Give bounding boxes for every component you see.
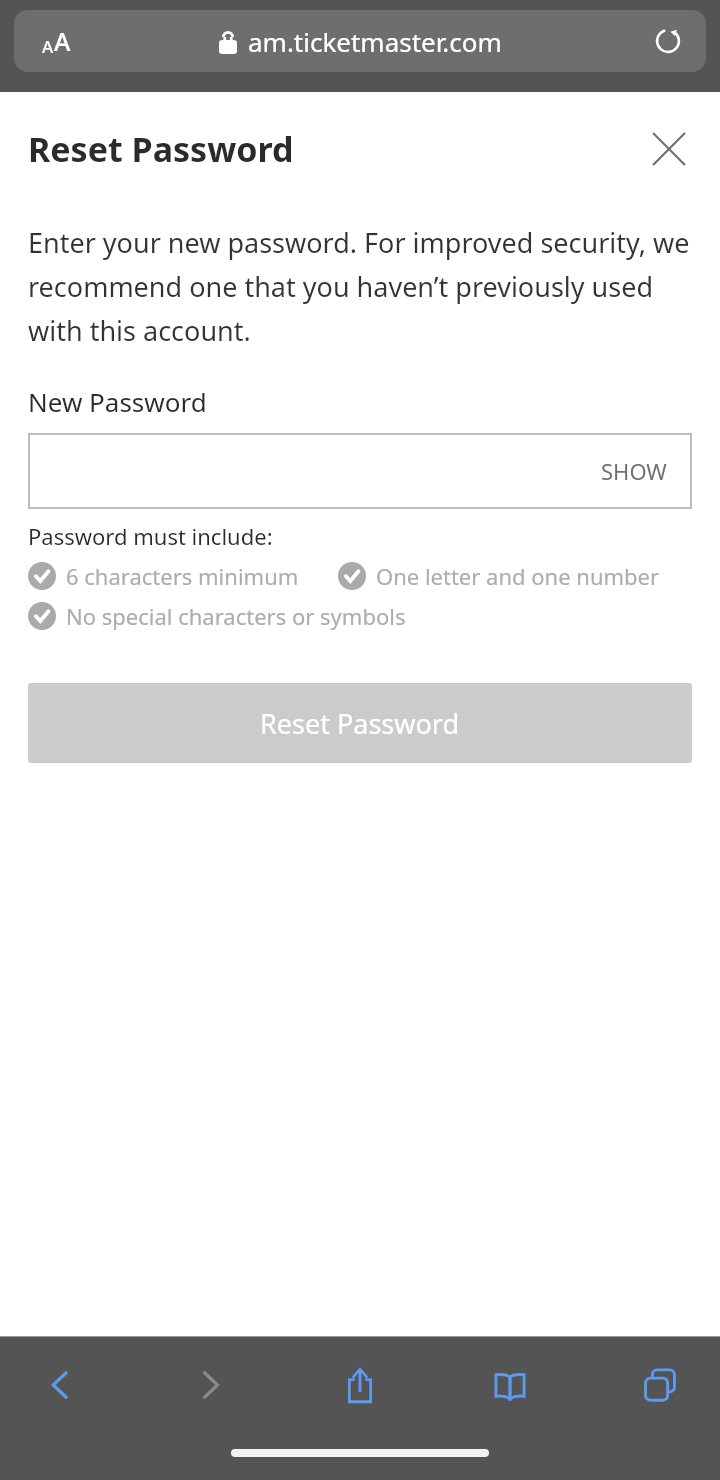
staticText: am.ticketmaster.com bbox=[248, 24, 502, 59]
button[interactable]: Reload page bbox=[646, 19, 690, 63]
button[interactable]: Close bbox=[642, 122, 696, 176]
button[interactable]: SHOW bbox=[28, 433, 692, 509]
staticText: New Password bbox=[28, 384, 207, 419]
button[interactable]: Share bbox=[322, 1347, 398, 1423]
staticText: 6 characters minimum bbox=[66, 561, 299, 591]
button[interactable]: Bookmarks bbox=[472, 1347, 548, 1423]
staticText: Reset Password bbox=[28, 126, 294, 172]
staticText: A bbox=[42, 35, 54, 58]
button[interactable]: Text size options bbox=[14, 10, 706, 72]
button[interactable]: Text size options bbox=[28, 18, 84, 64]
staticText: A bbox=[54, 24, 71, 58]
staticText: SHOW bbox=[601, 456, 667, 486]
button[interactable]: Back bbox=[22, 1347, 98, 1423]
staticText: One letter and one number bbox=[376, 561, 660, 591]
staticText: Enter your new password. For improved se… bbox=[28, 224, 690, 348]
staticText: Reset Password bbox=[260, 705, 460, 742]
staticText: No special characters or symbols bbox=[66, 601, 406, 631]
staticText: Password must include: bbox=[28, 521, 273, 551]
button[interactable]: Forward bbox=[172, 1347, 248, 1423]
button[interactable]: Tabs bbox=[622, 1347, 698, 1423]
button[interactable]: Reset Password bbox=[28, 683, 692, 763]
button[interactable]: SHOW bbox=[601, 456, 667, 486]
